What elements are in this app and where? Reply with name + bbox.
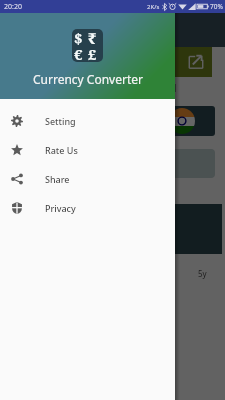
staticText: Setting	[45, 115, 76, 127]
staticText: 70%	[210, 2, 223, 11]
staticText: Share	[45, 173, 70, 185]
staticText: Currency Converter	[48, 16, 158, 32]
staticText: $	[74, 29, 83, 48]
other: Share	[11, 173, 23, 185]
button[interactable]: Settings	[0, 106, 175, 135]
button[interactable]: Privacy	[0, 193, 175, 222]
staticText: £	[88, 44, 97, 62]
staticText: ₹	[88, 29, 97, 48]
button[interactable]: Share	[0, 164, 175, 193]
staticText: 5y	[198, 268, 207, 279]
staticText: Rate Us	[45, 144, 78, 156]
staticText: 2K/s	[147, 3, 160, 11]
staticText: €	[74, 44, 83, 62]
other: Privacy	[11, 202, 23, 214]
staticText: Privacy	[45, 202, 76, 214]
staticText: 1	[172, 81, 178, 95]
staticText: 20:20	[4, 2, 22, 12]
other: Settings	[11, 115, 23, 127]
button[interactable]: Rate Us	[0, 135, 175, 164]
other: Rate Us	[11, 144, 23, 156]
staticText: Currency Converter	[33, 71, 143, 87]
